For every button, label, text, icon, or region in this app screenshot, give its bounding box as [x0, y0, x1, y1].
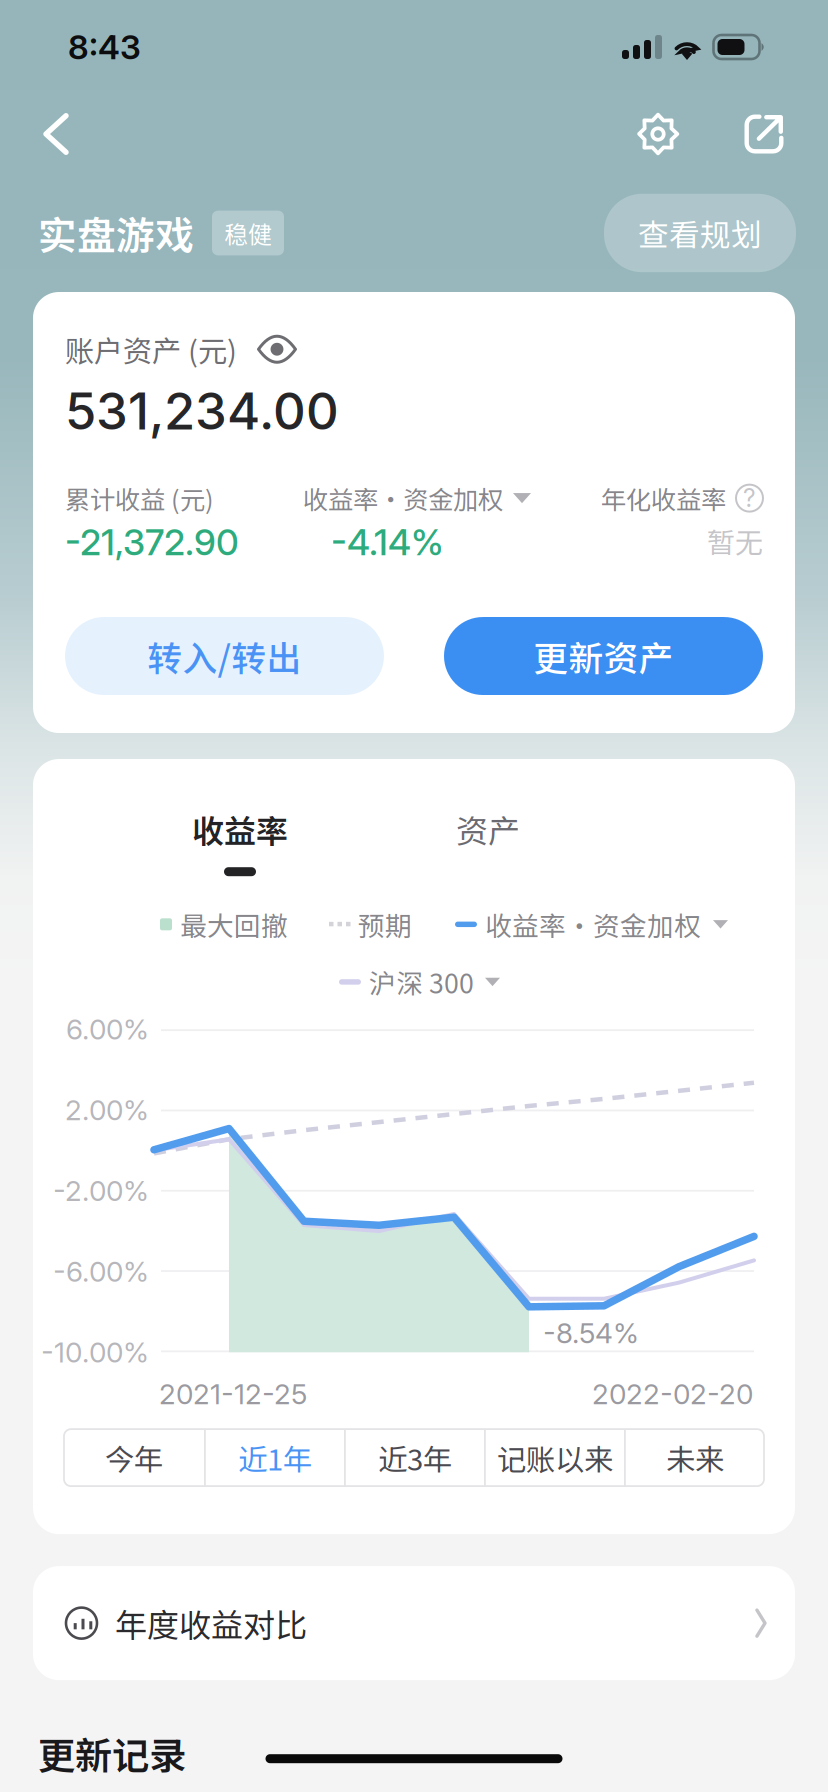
staticText: 2.00% [65, 1093, 149, 1127]
staticText: 收益率·资金加权 [303, 480, 503, 516]
button[interactable]: 年度收益对比 [33, 1566, 795, 1680]
staticText: 账户资产 (元) [65, 328, 237, 370]
staticText: 暂无 [707, 520, 763, 561]
button[interactable]: 收益率·资金加权 [303, 480, 531, 516]
staticText: -10.00% [41, 1335, 149, 1369]
button[interactable]: 更新资产 [444, 617, 763, 695]
staticText: 8:43 [68, 27, 141, 67]
button[interactable]: 收益率 [140, 811, 340, 871]
staticText: 未来 [666, 1436, 724, 1479]
button[interactable]: 隐藏金额 [257, 337, 297, 362]
staticText: 预期 [358, 905, 412, 944]
staticText: -2.00% [53, 1174, 149, 1208]
staticText: 近3年 [378, 1436, 452, 1479]
staticText: 稳健 [224, 216, 272, 250]
button[interactable]: 记账以来 [486, 1429, 624, 1486]
staticText: 年化收益率 [601, 480, 726, 516]
button[interactable]: 今年 [64, 1429, 204, 1486]
staticText: 2022-02-20 [592, 1377, 753, 1411]
staticText: 最大回撤 [180, 905, 288, 944]
button[interactable]: 查看规划 [604, 194, 796, 272]
staticText: 更新记录 [38, 1726, 186, 1780]
staticText: 近1年 [238, 1436, 312, 1479]
button[interactable]: 资产 [388, 811, 588, 871]
staticText: 累计收益 (元) [65, 480, 214, 516]
staticText: 查看规划 [638, 211, 762, 255]
staticText: 沪深 300 [369, 963, 474, 1001]
staticText: 收益率 [192, 806, 288, 852]
staticText: -8.54% [543, 1316, 639, 1350]
staticText: 6.00% [66, 1012, 149, 1046]
button[interactable]: 近1年 [206, 1429, 344, 1486]
staticText: 更新资产 [533, 631, 673, 681]
staticText: 实盘游戏 [38, 205, 194, 261]
button[interactable]: 未来 [626, 1429, 764, 1486]
staticText: 今年 [105, 1436, 163, 1479]
staticText: -4.14% [331, 520, 444, 564]
staticText: 转入/转出 [147, 631, 301, 681]
staticText: 收益率·资金加权 [485, 905, 701, 944]
button[interactable]: 收益率·资金加权 [455, 905, 728, 944]
staticText: ? [743, 483, 756, 513]
button[interactable]: 转入/转出 [65, 617, 384, 695]
staticText: 年度收益对比 [115, 1600, 307, 1646]
button[interactable]: 返回 [18, 96, 94, 172]
staticText: -21,372.90 [65, 520, 239, 564]
staticText: -6.00% [53, 1255, 149, 1288]
button[interactable]: 设置 [620, 96, 696, 172]
staticText: 资产 [456, 806, 520, 852]
staticText: 记账以来 [497, 1436, 613, 1479]
staticText: 531,234.00 [65, 380, 339, 442]
button[interactable]: 近3年 [346, 1429, 484, 1486]
button[interactable]: 分享 [726, 96, 802, 172]
staticText: 2021-12-25 [159, 1377, 307, 1411]
button[interactable]: 沪深 300 [339, 963, 500, 1001]
